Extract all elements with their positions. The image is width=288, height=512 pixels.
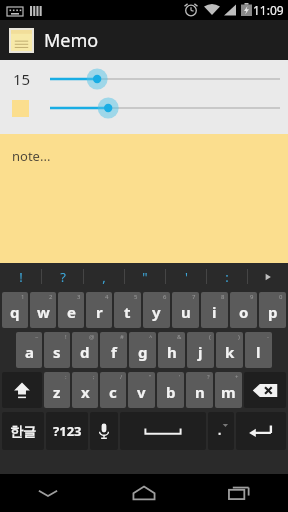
staticText: 7	[192, 293, 196, 301]
button[interactable]: !	[0, 263, 41, 290]
button[interactable]: :	[207, 263, 247, 290]
button[interactable]: 7	[172, 292, 199, 328]
button[interactable]: -	[245, 332, 272, 368]
button[interactable]: 2	[30, 292, 56, 328]
staticText: :	[65, 373, 67, 381]
button[interactable]: 3	[58, 292, 84, 328]
button[interactable]: Home	[96, 474, 192, 512]
staticText: 3	[77, 293, 81, 301]
staticText: ?123	[53, 422, 82, 440]
staticText: '	[185, 268, 188, 286]
staticText: "	[142, 268, 148, 286]
staticText: m	[221, 382, 236, 402]
staticText: !	[65, 333, 67, 341]
staticText: c	[109, 382, 117, 402]
button[interactable]: Memo	[0, 20, 288, 60]
staticText: 9	[250, 293, 254, 301]
button[interactable]: ?	[186, 372, 213, 408]
button[interactable]: (	[187, 332, 214, 368]
button[interactable]: 8	[201, 292, 228, 328]
button[interactable]: ?	[42, 263, 83, 290]
button[interactable]: :	[44, 372, 70, 408]
button[interactable]: 6	[143, 292, 170, 328]
button[interactable]: !	[44, 332, 70, 368]
button[interactable]: Shift	[2, 372, 42, 408]
button[interactable]: 0	[259, 292, 286, 328]
staticText: 15	[13, 69, 31, 89]
staticText: e	[67, 302, 76, 322]
button[interactable]: )	[216, 332, 243, 368]
staticText: -	[267, 333, 269, 341]
staticText: /	[120, 373, 123, 381]
button[interactable]: 5	[114, 292, 141, 328]
button[interactable]	[48, 66, 282, 92]
button[interactable]: Hide keyboard	[0, 474, 96, 512]
button[interactable]: /	[100, 372, 126, 408]
button[interactable]: &	[158, 332, 185, 368]
button[interactable]: Enter	[236, 412, 286, 450]
button[interactable]: Backspace	[244, 372, 286, 408]
button[interactable]: ^	[129, 332, 156, 368]
button[interactable]: Period	[208, 412, 234, 450]
button[interactable]: ~	[16, 332, 42, 368]
staticText: #	[120, 333, 124, 341]
button[interactable]: "	[128, 372, 155, 408]
staticText: q	[10, 302, 20, 322]
staticText: '	[179, 373, 181, 381]
button[interactable]: '	[166, 263, 206, 290]
staticText: a	[25, 342, 34, 362]
staticText: s	[53, 342, 61, 362]
staticText: d	[80, 342, 90, 362]
staticText: l	[256, 342, 261, 362]
staticText: (	[209, 333, 211, 341]
button[interactable]: ,	[84, 263, 124, 290]
staticText: 6	[163, 293, 167, 301]
staticText: @	[89, 333, 95, 341]
button[interactable]	[48, 94, 282, 122]
staticText: 0	[279, 293, 283, 301]
staticText: +	[235, 373, 239, 381]
staticText: j	[198, 342, 203, 362]
button[interactable]: ;	[72, 372, 98, 408]
button[interactable]: 4	[86, 292, 112, 328]
staticText: ?	[60, 268, 66, 286]
button[interactable]: 9	[230, 292, 257, 328]
button[interactable]: Space	[120, 412, 206, 450]
staticText: :	[225, 268, 229, 286]
button[interactable]: Voice input	[90, 412, 118, 450]
button[interactable]: Recent apps	[192, 474, 288, 512]
staticText: 2	[49, 293, 53, 301]
staticText: Memo	[44, 28, 99, 53]
staticText: h	[167, 342, 177, 362]
button[interactable]: 1	[2, 292, 28, 328]
button[interactable]: @	[72, 332, 98, 368]
staticText: ~	[35, 333, 39, 341]
staticText: 한글	[10, 423, 36, 439]
button[interactable]: More suggestions	[248, 263, 288, 290]
staticText: t	[124, 302, 131, 322]
staticText: ,	[102, 268, 106, 286]
staticText: 4	[105, 293, 109, 301]
staticText: 8	[221, 293, 225, 301]
button[interactable]: #	[100, 332, 127, 368]
staticText: 5	[134, 293, 138, 301]
staticText: &	[177, 333, 182, 341]
button[interactable]: +	[215, 372, 242, 408]
staticText: o	[239, 302, 249, 322]
staticText: r	[96, 302, 103, 322]
button[interactable]: ?123	[46, 412, 88, 450]
staticText: n	[195, 382, 205, 402]
staticText: 11:09	[253, 2, 284, 18]
staticText: v	[137, 382, 146, 402]
button[interactable]: '	[157, 372, 184, 408]
staticText: u	[181, 302, 191, 322]
staticText: i	[212, 302, 217, 322]
button[interactable]: 한글	[2, 412, 44, 450]
button[interactable]: note...	[0, 134, 288, 263]
button[interactable]: 15	[0, 66, 288, 92]
button[interactable]: "	[125, 263, 165, 290]
staticText: w	[37, 302, 50, 322]
button[interactable]	[0, 94, 288, 122]
staticText: b	[166, 382, 176, 402]
